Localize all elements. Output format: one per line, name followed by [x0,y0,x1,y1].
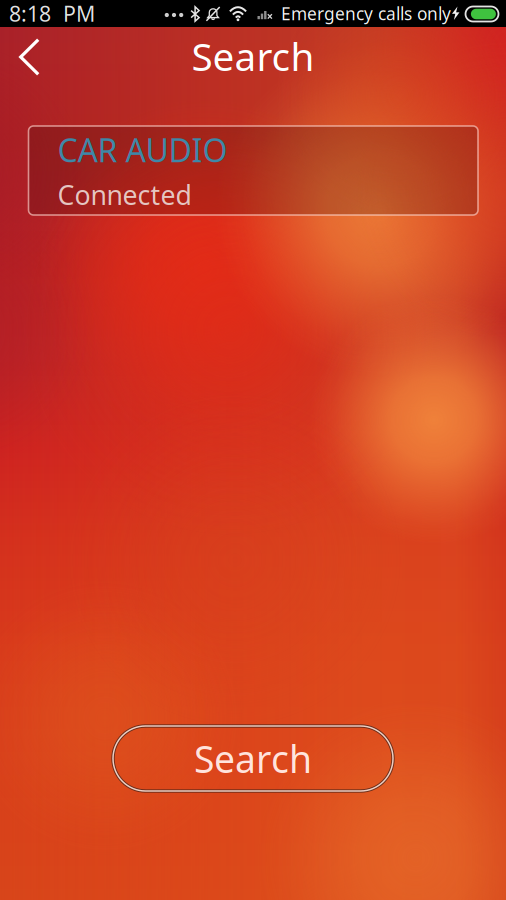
staticText: Connected [57,177,191,212]
staticText: 8:18 PM [9,0,95,28]
staticText: Emergency calls only [281,2,451,25]
staticText: Search [194,734,312,783]
staticText: Search [191,30,314,82]
button[interactable]: Search [113,726,393,791]
staticText: CAR AUDIO [57,128,227,171]
button[interactable]: Back [0,28,58,86]
button[interactable]: CAR AUDIO [28,126,478,215]
